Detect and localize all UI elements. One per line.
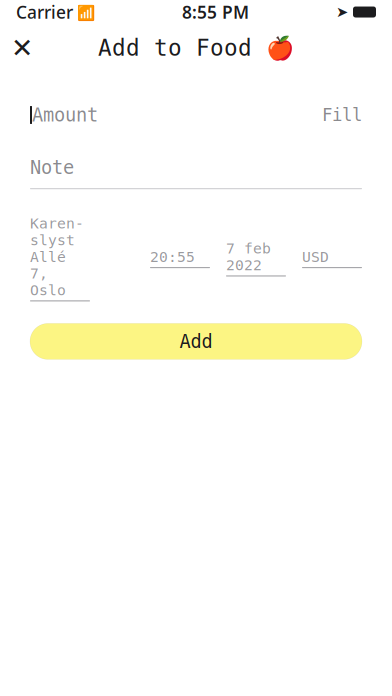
staticText: Fill [322, 105, 362, 125]
button[interactable]: Karenslyst Allé 7, Oslo [30, 215, 90, 301]
staticText: Amount [32, 104, 98, 126]
button[interactable]: Fill [322, 105, 362, 125]
button[interactable]: 7 feb 2022 [226, 240, 286, 276]
button[interactable]: Close [0, 26, 44, 70]
staticText: 20:55 [150, 248, 195, 265]
staticText: ➤ [336, 4, 348, 20]
button[interactable]: USD [302, 248, 362, 268]
staticText: 8:55 PM [182, 0, 249, 23]
staticText: ✕ [11, 33, 33, 63]
button[interactable]: Add [30, 323, 362, 359]
staticText: Add [179, 331, 212, 352]
staticText: Note [30, 157, 74, 178]
staticText: 7 feb 2022 [226, 240, 271, 273]
staticText: USD [302, 248, 329, 265]
button[interactable]: 20:55 [150, 248, 210, 268]
staticText: Karenslyst Allé 7, Oslo [30, 215, 84, 298]
staticText: Add to Food 🍎 [98, 35, 294, 61]
staticText: Carrier [16, 0, 73, 23]
staticText: 📶 [73, 2, 95, 22]
